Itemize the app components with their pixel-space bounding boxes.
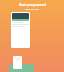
staticText: Reset your password [19, 3, 46, 7]
button[interactable] [11, 12, 30, 48]
other: Email illustration [13, 56, 22, 69]
staticText: Check your email [25, 8, 39, 10]
